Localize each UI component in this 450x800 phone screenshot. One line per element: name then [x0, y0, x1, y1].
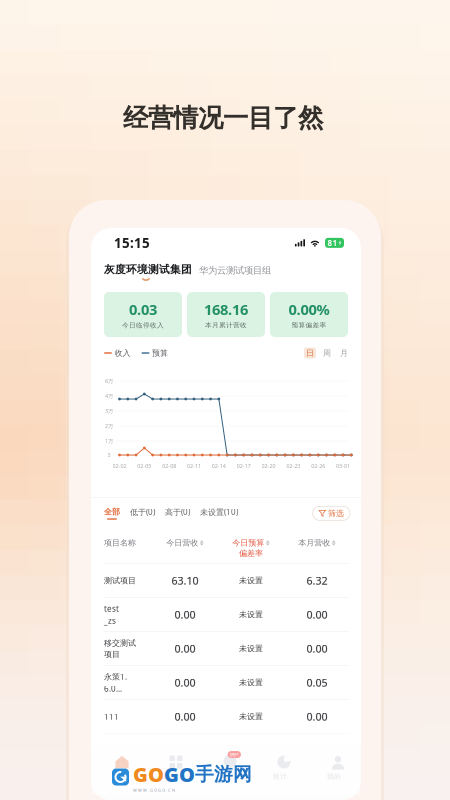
staticText: 99+ — [230, 751, 239, 758]
staticText: 15:15 — [114, 234, 150, 252]
button[interactable]: 灰度环境测试集团 — [104, 263, 192, 276]
staticText: 0.00% — [288, 300, 329, 319]
staticText: 02-02 — [112, 462, 126, 470]
staticText: 手游网 — [195, 763, 252, 786]
staticText: 02-17 — [237, 462, 251, 470]
button[interactable]: 统计 — [253, 745, 307, 781]
staticText: 偏差率 — [239, 548, 263, 558]
staticText: 0.05 — [306, 676, 327, 690]
staticText: 日 — [306, 348, 314, 358]
button[interactable]: 月 — [338, 347, 350, 358]
staticText: 2万 — [105, 422, 113, 430]
staticText: 今日营收 — [166, 538, 198, 548]
staticText: 未设置(10) — [200, 507, 238, 517]
button[interactable]: 低于(0) — [130, 507, 165, 520]
staticText: 首页 — [111, 772, 125, 781]
staticText: 灰度环境测试集团 — [104, 263, 192, 276]
button[interactable]: 工作台 — [145, 745, 199, 781]
staticText: 高于(0) — [165, 507, 190, 517]
staticText: W W W . G O G O . C N — [133, 788, 175, 793]
button[interactable]: 筛选 — [313, 506, 350, 520]
button[interactable]: 0.03 — [104, 292, 182, 337]
staticText: 全部 — [104, 507, 120, 517]
staticText: 1万 — [105, 437, 113, 445]
staticText: 未设置 — [239, 678, 263, 687]
staticText: 月 — [340, 348, 348, 358]
staticText: 0.00 — [174, 642, 195, 656]
staticText: 我的 — [327, 772, 341, 781]
staticText: 6.32 — [306, 574, 327, 588]
staticText: 111 — [104, 711, 119, 722]
staticText: 0.03 — [129, 300, 157, 319]
staticText: 0.00 — [306, 642, 327, 656]
button[interactable]: 全部 — [104, 507, 130, 520]
staticText: 低于(0) — [130, 507, 155, 517]
staticText: 0.00 — [174, 710, 195, 724]
staticText: 预算偏差率 — [291, 321, 326, 329]
staticText: 02-14 — [212, 462, 226, 470]
staticText: 今日预算 — [232, 538, 264, 548]
staticText: GO — [164, 761, 195, 788]
staticText: 未设置 — [239, 712, 263, 721]
button[interactable]: 168.16 — [187, 292, 265, 337]
staticText: 02-08 — [162, 462, 176, 470]
staticText: 02-11 — [187, 462, 201, 470]
button[interactable]: 移交测试 — [91, 632, 361, 666]
staticText: 统计 — [273, 772, 287, 781]
button[interactable]: test — [91, 598, 361, 632]
staticText: 周 — [323, 348, 331, 358]
staticText: GO — [133, 761, 164, 788]
staticText: 168.16 — [204, 300, 248, 319]
staticText: 经营情况一目了然 — [123, 102, 323, 133]
button[interactable]: 高于(0) — [165, 507, 200, 520]
staticText: 筛选 — [328, 508, 344, 518]
button[interactable]: 我的 — [307, 745, 361, 781]
staticText: 81 — [327, 237, 337, 248]
button[interactable]: 周 — [321, 347, 333, 358]
staticText: 华为云测试项目组 — [199, 265, 271, 276]
staticText: 本月累计营收 — [205, 321, 247, 329]
staticText: 02-23 — [286, 462, 300, 470]
staticText: 项目 — [104, 649, 120, 659]
staticText: 03-01 — [336, 462, 350, 470]
staticText: 02-05 — [137, 462, 151, 470]
button[interactable]: 测试项目 — [91, 564, 361, 598]
staticText: 0.00 — [174, 608, 195, 622]
staticText: 永策1. — [104, 671, 127, 682]
button[interactable]: 99+ — [199, 745, 253, 781]
staticText: 收入 — [114, 348, 130, 358]
staticText: 0 — [107, 451, 110, 459]
staticText: 3万 — [105, 407, 113, 415]
staticText: 未设置 — [239, 610, 263, 619]
staticText: 02-26 — [311, 462, 325, 470]
staticText: 本月营收 — [298, 538, 330, 548]
staticText: 预算 — [152, 348, 168, 358]
button[interactable]: 0.00% — [270, 292, 348, 337]
button[interactable]: 未设置(10) — [200, 507, 248, 520]
staticText: test — [104, 603, 119, 614]
button[interactable]: 永策1. — [91, 666, 361, 700]
staticText: 消息 — [219, 772, 233, 781]
button[interactable]: 华为云测试项目组 — [199, 265, 271, 276]
button[interactable]: 111 — [91, 700, 361, 734]
button[interactable]: 日 — [304, 347, 316, 358]
staticText: 测试项目 — [104, 576, 136, 585]
staticText: 4万 — [105, 392, 113, 400]
staticText: 0.00 — [306, 608, 327, 622]
staticText: 63.10 — [171, 574, 198, 588]
staticText: 移交测试 — [104, 638, 136, 648]
staticText: 0.00 — [174, 676, 195, 690]
staticText: 0.00 — [306, 710, 327, 724]
button[interactable]: 首页 — [91, 745, 145, 781]
staticText: 6.0... — [104, 683, 122, 694]
staticText: 未设置 — [239, 576, 263, 585]
staticText: _zs — [104, 615, 116, 626]
staticText: 今日临停收入 — [122, 321, 164, 329]
staticText: 6万 — [105, 377, 113, 385]
staticText: 工作台 — [161, 772, 182, 781]
staticText: 未设置 — [239, 644, 263, 653]
staticText: 项目名称 — [104, 538, 136, 548]
staticText: 02-20 — [261, 462, 275, 470]
